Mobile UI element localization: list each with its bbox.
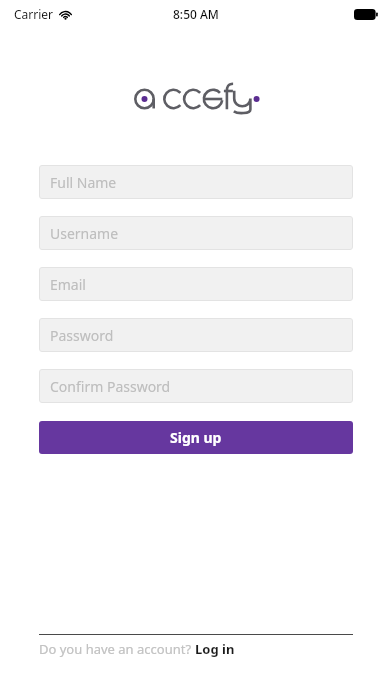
- staticText: Do you have an account?: [39, 640, 195, 658]
- staticText: Email: [50, 275, 86, 294]
- staticText: Username: [50, 224, 119, 243]
- staticText: Sign up: [170, 428, 222, 447]
- other: accefy logo: [134, 83, 258, 115]
- staticText: Carrier: [14, 6, 54, 22]
- staticText: Full Name: [50, 173, 117, 192]
- button[interactable]: Sign up: [39, 421, 353, 454]
- button[interactable]: Full Name: [39, 165, 353, 199]
- staticText: Password: [50, 326, 114, 345]
- button[interactable]: Password: [39, 318, 353, 352]
- button[interactable]: Email: [39, 267, 353, 301]
- staticText: Confirm Password: [50, 377, 171, 396]
- button[interactable]: Do you have an account?: [39, 640, 353, 658]
- button[interactable]: Confirm Password: [39, 369, 353, 403]
- staticText: 8:50 AM: [173, 6, 219, 22]
- button[interactable]: Username: [39, 216, 353, 250]
- staticText: Log in: [195, 640, 235, 658]
